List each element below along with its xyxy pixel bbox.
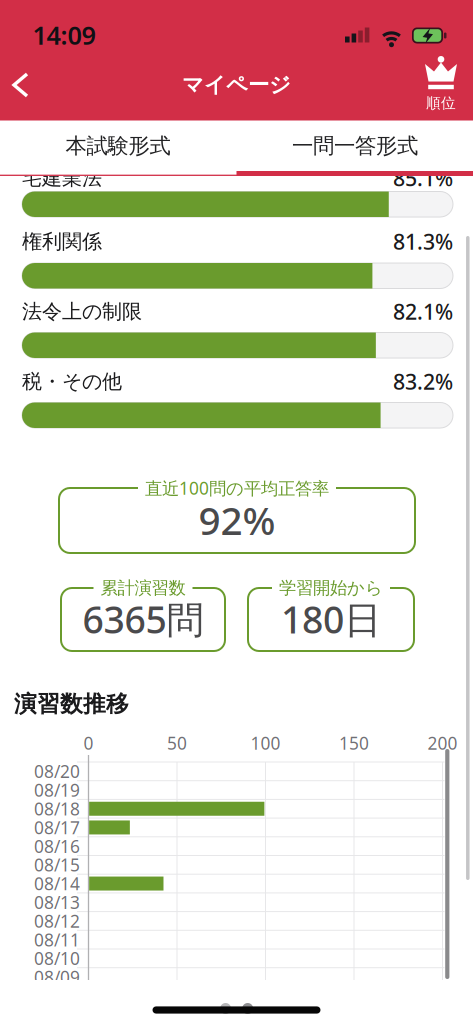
button[interactable]: 順位: [0, 0, 473, 1024]
staticText: 順位: [426, 94, 456, 112]
staticText: 50: [167, 731, 187, 754]
staticText: マイページ: [182, 72, 291, 98]
staticText: 83.2%: [393, 367, 453, 396]
staticText: 08/12: [34, 909, 80, 932]
staticText: 08/18: [34, 797, 80, 820]
staticText: 08/09: [34, 965, 80, 988]
staticText: 100: [250, 731, 280, 754]
staticText: 85.1%: [393, 164, 453, 192]
staticText: 6365問: [82, 594, 203, 644]
button[interactable]: 本試験形式: [0, 121, 236, 171]
staticText: 150: [339, 731, 369, 754]
staticText: 学習開始から: [279, 577, 383, 599]
staticText: 08/16: [34, 835, 80, 858]
staticText: 81.3%: [393, 227, 453, 256]
staticText: 08/19: [34, 778, 80, 801]
staticText: 14:09: [32, 18, 95, 52]
staticText: 本試験形式: [65, 133, 170, 159]
staticText: 08/10: [34, 947, 80, 970]
staticText: 08/17: [34, 816, 80, 839]
staticText: 直近100問の平均正答率: [145, 476, 329, 499]
staticText: 一問一答形式: [292, 133, 418, 159]
staticText: 法令上の制限: [22, 299, 142, 324]
staticText: 08/11: [34, 928, 80, 951]
staticText: 権利関係: [22, 229, 102, 254]
staticText: 税・その他: [22, 369, 122, 394]
staticText: 92%: [198, 494, 275, 546]
staticText: 累計演習数: [100, 577, 185, 599]
staticText: 08/20: [34, 760, 80, 783]
button[interactable]: Back: [5, 63, 35, 107]
button[interactable]: 一問一答形式: [237, 121, 473, 171]
staticText: 82.1%: [393, 297, 453, 326]
staticText: 演習数推移: [14, 690, 129, 718]
staticText: 08/15: [34, 853, 80, 876]
staticText: 0: [83, 731, 93, 754]
staticText: 08/13: [34, 891, 80, 914]
staticText: 宅建業法: [22, 166, 102, 190]
staticText: 08/14: [34, 872, 80, 895]
staticText: 200: [427, 731, 457, 754]
staticText: 180日: [281, 594, 381, 644]
